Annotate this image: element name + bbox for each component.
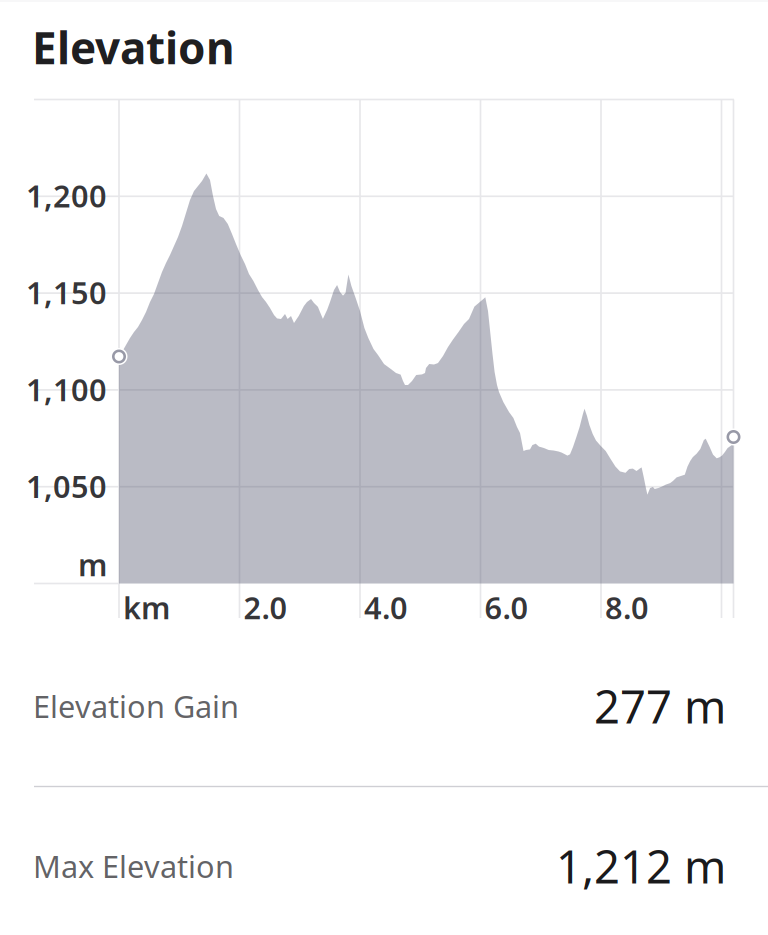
staticText: Max Elevation (33, 846, 234, 886)
staticText: 8.0 (605, 587, 649, 628)
staticText: m (78, 544, 107, 585)
staticText: km (123, 587, 170, 628)
staticText: 1,050 (26, 466, 107, 506)
staticText: 6.0 (484, 587, 528, 628)
staticText: 1,150 (26, 272, 107, 313)
button[interactable]: Elevation Gain (33, 678, 726, 734)
staticText: 2.0 (243, 587, 287, 628)
button[interactable]: Max Elevation (33, 838, 726, 894)
staticText: Elevation (32, 18, 235, 76)
staticText: 277 m (594, 676, 726, 736)
staticText: 4.0 (364, 587, 408, 628)
staticText: 1,212 m (556, 836, 726, 896)
staticText: Elevation Gain (33, 686, 239, 726)
staticText: 1,100 (26, 369, 107, 410)
staticText: 1,200 (26, 175, 107, 216)
